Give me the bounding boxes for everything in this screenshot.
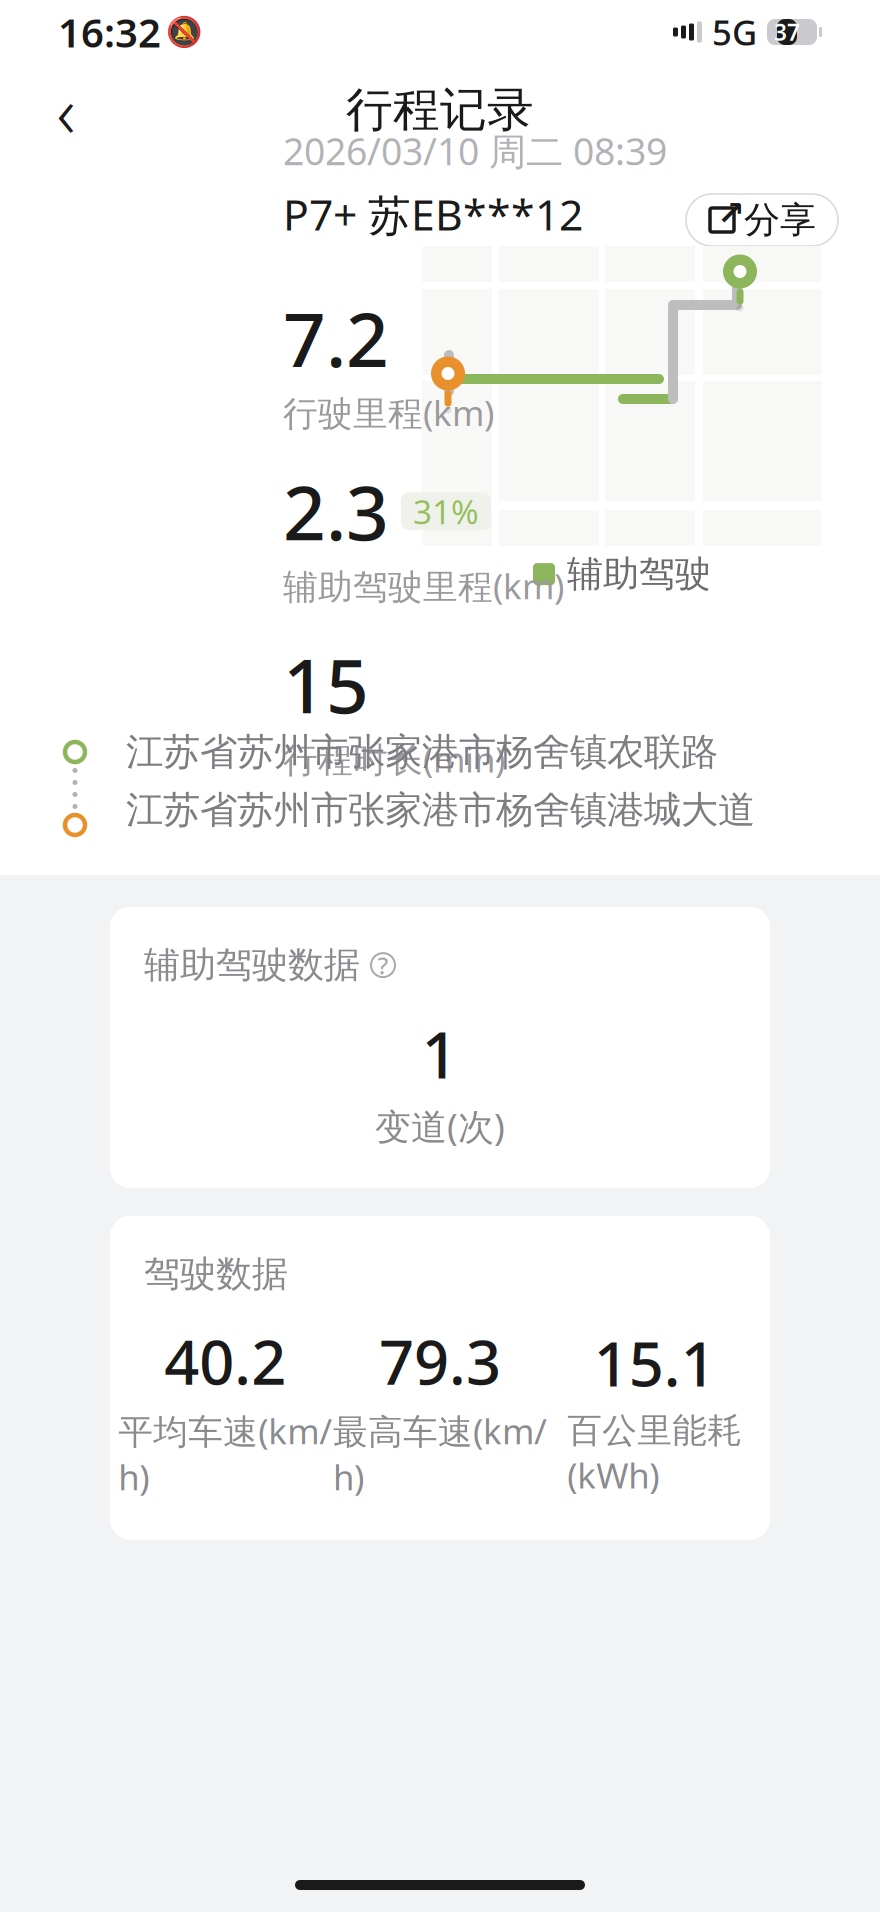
staticText: 15.1 — [594, 1322, 716, 1403]
staticText: 辅助驾驶 — [567, 552, 711, 596]
staticText: 7.2 — [283, 288, 389, 388]
staticText: 🔕 — [165, 15, 202, 49]
staticText: P7+ 苏EB***12 — [283, 186, 583, 242]
staticText: ↗ — [717, 194, 745, 232]
staticText: 分享 — [744, 198, 816, 242]
staticText: 江苏省苏州市张家港市杨舍镇港城大道 — [126, 787, 755, 833]
staticText: 37 — [774, 17, 800, 47]
staticText: 行驶里程(km) — [283, 390, 494, 436]
staticText: 变道(次) — [375, 1102, 505, 1150]
staticText: 79.3 — [379, 1320, 501, 1402]
staticText: 2026/03/10 周二 08:39 — [283, 126, 667, 176]
button[interactable]: 说明 — [368, 950, 398, 980]
staticText: 行程记录 — [346, 81, 534, 139]
staticText: 行程时长(min) — [283, 736, 505, 782]
staticText: 江苏省苏州市张家港市杨舍镇农联路 — [126, 729, 718, 775]
staticText: ? — [377, 949, 388, 981]
button[interactable]: 返回 — [30, 74, 102, 146]
staticText: 16:32 — [58, 5, 161, 58]
button[interactable]: ↗ — [686, 194, 838, 246]
staticText: 平均车速(km/h) — [118, 1408, 332, 1500]
staticText: 1 — [421, 1011, 458, 1096]
staticText: ‹ — [56, 62, 75, 158]
staticText: 40.2 — [164, 1320, 286, 1402]
staticText: 31% — [413, 489, 479, 533]
staticText: 5G — [712, 9, 757, 55]
staticText: 驾驶数据 — [144, 1252, 288, 1296]
staticText: 辅助驾驶数据 — [144, 943, 360, 987]
staticText: 百公里能耗(kWh) — [567, 1409, 742, 1498]
staticText: 辅助驾驶里程(km) — [283, 563, 564, 609]
staticText: 15 — [283, 635, 369, 734]
staticText: 2.3 — [283, 462, 389, 561]
staticText: 最高车速(km/h) — [333, 1408, 547, 1500]
